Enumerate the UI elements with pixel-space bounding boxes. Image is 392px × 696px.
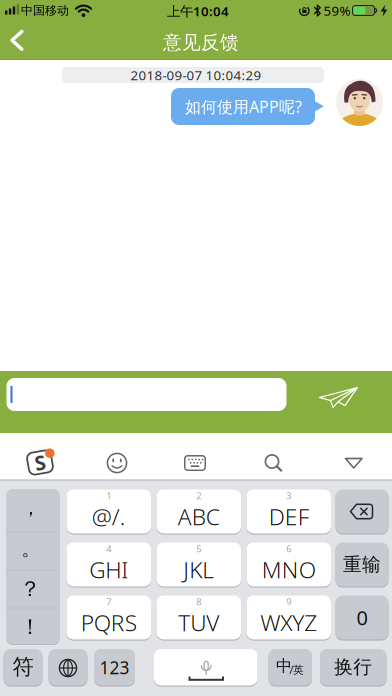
- staticText: S: [34, 449, 45, 476]
- staticText: ？: [19, 576, 40, 602]
- staticText: ！: [19, 614, 40, 640]
- staticText: 上午10:04: [167, 2, 229, 20]
- staticText: 6: [286, 542, 291, 555]
- staticText: 中: [276, 656, 292, 676]
- staticText: /: [289, 662, 293, 677]
- staticText: @/.: [92, 501, 126, 531]
- staticText: 英: [293, 663, 304, 676]
- staticText: WXYZ: [260, 607, 317, 637]
- staticText: 2: [196, 489, 201, 502]
- staticText: 换行: [334, 655, 372, 678]
- staticText: 符: [12, 654, 33, 680]
- staticText: 3: [286, 489, 291, 502]
- staticText: ABC: [178, 501, 220, 531]
- staticText: 9: [286, 595, 291, 608]
- staticText: 意见反馈: [163, 31, 239, 54]
- staticText: 1: [106, 489, 111, 502]
- staticText: 8: [196, 595, 201, 608]
- staticText: 123: [99, 656, 129, 679]
- staticText: GHI: [89, 554, 128, 584]
- staticText: 5: [196, 542, 201, 555]
- staticText: 重输: [343, 553, 381, 576]
- staticText: 中国移动: [21, 3, 69, 18]
- staticText: 0: [356, 604, 367, 631]
- staticText: 59%: [323, 2, 350, 19]
- staticText: 如何使用APP呢?: [185, 96, 302, 117]
- staticText: DEF: [269, 501, 309, 531]
- staticText: 7: [106, 595, 111, 608]
- staticText: MNO: [262, 554, 316, 584]
- staticText: ，: [21, 496, 40, 519]
- staticText: PQRS: [81, 607, 137, 637]
- staticText: TUV: [178, 607, 219, 637]
- staticText: 4: [106, 542, 111, 555]
- staticText: JKL: [183, 554, 214, 584]
- staticText: 。: [21, 537, 40, 560]
- staticText: 2018-09-07 10:04:29: [130, 66, 261, 84]
